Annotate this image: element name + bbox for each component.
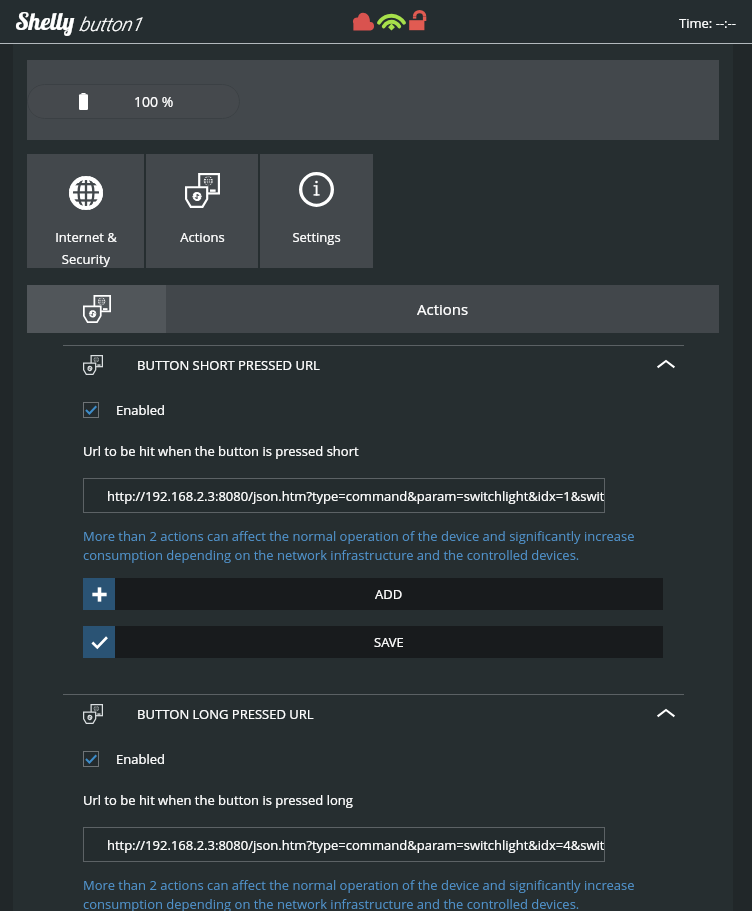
staticText: Enabled	[116, 750, 165, 768]
staticText: Settings	[292, 228, 341, 246]
staticText: More than 2 actions can affect the norma…	[83, 527, 635, 564]
staticText: BUTTON LONG PRESSED URL	[137, 705, 314, 723]
staticText: http://192.168.2.3:8080/json.htm?type=co…	[107, 487, 605, 505]
button[interactable]: ADD	[83, 578, 663, 610]
staticText: Actions	[417, 299, 469, 319]
staticText: button1	[79, 13, 142, 35]
button[interactable]: SAVE	[83, 626, 663, 658]
staticText: SAVE	[374, 633, 404, 651]
staticText: 100 %	[134, 92, 174, 111]
staticText: Url to be hit when the button is pressed…	[83, 442, 359, 460]
button[interactable]: Internet & Security	[27, 154, 144, 268]
staticText: Url to be hit when the button is pressed…	[83, 791, 353, 809]
staticText: ADD	[375, 585, 403, 603]
staticText: Enabled	[116, 401, 165, 419]
staticText: http://192.168.2.3:8080/json.htm?type=co…	[107, 836, 605, 854]
button[interactable]: Actions	[146, 154, 258, 268]
staticText: Internet & Security	[55, 228, 117, 268]
staticText: Shelly	[16, 6, 75, 36]
staticText: Actions	[180, 228, 225, 246]
button[interactable]: Enabled	[79, 746, 165, 772]
button[interactable]: 100 %	[27, 84, 240, 119]
button[interactable]: BUTTON SHORT PRESSED URL	[13, 346, 719, 383]
staticText: More than 2 actions can affect the norma…	[83, 876, 635, 911]
button[interactable]: Actions	[27, 285, 166, 333]
button[interactable]: Settings	[260, 154, 373, 268]
staticText: Time: --:--	[679, 14, 736, 32]
button[interactable]: BUTTON LONG PRESSED URL	[13, 695, 719, 732]
staticText: BUTTON SHORT PRESSED URL	[137, 356, 320, 374]
button[interactable]: Actions	[166, 285, 719, 333]
button[interactable]: Enabled	[79, 397, 165, 423]
